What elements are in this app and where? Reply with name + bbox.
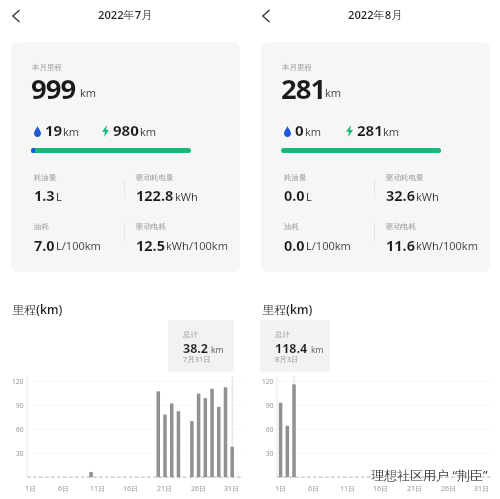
staticText: 本月里程 [282,63,312,72]
staticText: km [63,124,80,139]
staticText: 120 [262,377,274,386]
staticText: 90 [16,401,24,410]
staticText: 理想社区用户 “荆臣” [371,466,488,484]
staticText: 21日 [157,484,173,494]
staticText: 26日 [441,484,457,494]
staticText: 7.0 [34,235,55,255]
staticText: L [56,189,62,204]
staticText: kWh [175,189,198,204]
staticText: 11.6 [386,235,415,255]
staticText: 980 [113,120,139,140]
staticText: 38.2 [183,340,208,357]
staticText: 2022年8月 [348,7,403,22]
staticText: 6日 [308,484,320,494]
staticText: 21日 [407,484,423,494]
staticText: 耗油量 [34,173,57,182]
staticText: 本月里程 [32,63,62,72]
staticText: 120 [12,377,24,386]
staticText: 11日 [340,484,356,494]
staticText: km [325,85,342,100]
staticText: 8月3日 [275,354,299,364]
staticText: 999 [31,70,76,107]
staticText: 1日 [275,484,287,494]
staticText: 耗油量 [284,173,307,182]
staticText: 驱动电耗 [386,222,416,231]
staticText: kWh [416,189,439,204]
staticText: 0 [295,120,304,140]
staticText: 281 [357,120,383,140]
staticText: 26日 [191,484,207,494]
staticText: km [80,85,97,100]
staticText: 总计 [275,330,290,339]
staticText: 驱动电耗 [136,222,166,231]
staticText: km [140,124,157,139]
staticText: km [305,124,322,139]
staticText: 118.4 [275,340,308,357]
staticText: 31日 [474,484,490,494]
staticText: km [311,344,324,356]
staticText: 16日 [373,484,389,494]
staticText: 60 [266,425,274,434]
staticText: 里程(km) [12,301,63,317]
staticText: 0.0 [284,185,305,205]
staticText: km [383,124,400,139]
staticText: 油耗 [284,222,299,231]
staticText: 0.0 [284,235,305,255]
staticText: 32.6 [386,185,415,205]
staticText: 驱动耗电量 [386,173,424,182]
staticText: 19 [45,120,63,140]
staticText: kWh/100km [166,238,229,253]
staticText: L/100km [306,238,351,253]
staticText: km [211,344,224,356]
staticText: 1.3 [34,185,55,205]
staticText: 驱动耗电量 [136,173,174,182]
staticText: 31日 [224,484,240,494]
staticText: 7月31日 [183,354,211,364]
staticText: 油耗 [34,222,49,231]
button[interactable]: Back [6,4,30,28]
staticText: 60 [16,425,24,434]
staticText: 11日 [90,484,106,494]
staticText: 总计 [183,330,198,339]
button[interactable]: Back [256,4,280,28]
staticText: L [306,189,312,204]
staticText: 里程(km) [262,301,313,317]
staticText: 281 [281,70,326,107]
staticText: 90 [266,401,274,410]
staticText: 12.5 [136,235,165,255]
staticText: L/100km [56,238,101,253]
staticText: 16日 [123,484,139,494]
staticText: 122.8 [136,185,174,205]
staticText: 6日 [58,484,70,494]
staticText: 30 [266,449,274,458]
staticText: 30 [16,449,24,458]
staticText: 2022年7月 [98,7,153,22]
staticText: 1日 [25,484,37,494]
staticText: kWh/100km [416,238,479,253]
